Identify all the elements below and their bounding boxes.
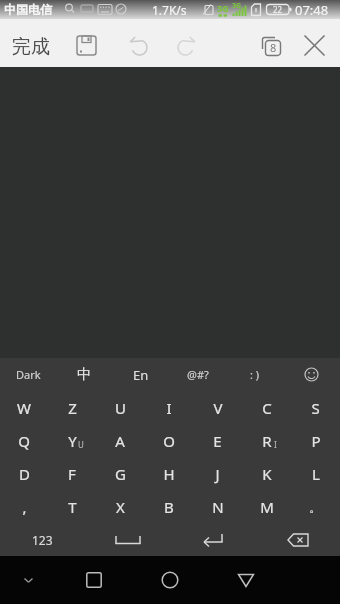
button[interactable]: Y	[48, 424, 96, 457]
button[interactable]: ,	[0, 490, 48, 523]
button[interactable]	[66, 24, 106, 67]
button[interactable]	[170, 523, 255, 556]
button[interactable]	[85, 523, 170, 556]
staticText: C	[262, 398, 272, 418]
button[interactable]: P	[291, 424, 340, 457]
staticText: O	[163, 431, 175, 451]
staticText: 中国电信	[4, 2, 52, 17]
button[interactable]: X	[96, 490, 144, 523]
button[interactable]: 123	[0, 523, 85, 556]
button[interactable]: M	[242, 490, 291, 523]
button[interactable]: S	[291, 391, 340, 424]
button[interactable]	[294, 24, 335, 67]
button[interactable]: En	[112, 358, 169, 391]
staticText: Y	[68, 431, 77, 451]
staticText: : )	[250, 367, 260, 382]
button[interactable]: 中	[56, 358, 112, 391]
button[interactable]: 。	[291, 490, 340, 523]
button[interactable]: K	[242, 457, 291, 490]
staticText: T	[68, 497, 77, 517]
button[interactable]: O	[144, 424, 193, 457]
staticText: D	[19, 464, 30, 484]
button[interactable]: 8	[249, 24, 293, 67]
button[interactable]: F	[48, 457, 96, 490]
staticText: X	[116, 497, 125, 517]
staticText: N	[212, 497, 224, 517]
button[interactable]	[283, 358, 340, 391]
button[interactable]: : )	[226, 358, 283, 391]
staticText: P	[311, 431, 321, 451]
button[interactable]: @#?	[169, 358, 226, 391]
button[interactable]: W	[0, 391, 48, 424]
staticText: R	[262, 431, 272, 451]
button[interactable]: D	[0, 457, 48, 490]
staticText: I	[166, 398, 172, 418]
button[interactable]: U	[96, 391, 144, 424]
button[interactable]: A	[96, 424, 144, 457]
button[interactable]: 完成	[3, 19, 59, 67]
staticText: Dark	[16, 367, 41, 382]
staticText: A	[115, 431, 125, 451]
staticText: F	[68, 464, 76, 484]
button[interactable]	[119, 24, 159, 67]
button[interactable]	[255, 523, 340, 556]
button[interactable]: E	[193, 424, 242, 457]
staticText: Z	[68, 398, 77, 418]
staticText: ,	[22, 497, 27, 517]
button[interactable]: Dark	[0, 358, 56, 391]
button[interactable]	[166, 24, 206, 67]
staticText: 123	[32, 532, 53, 548]
button[interactable]: H	[144, 457, 193, 490]
button[interactable]	[74, 556, 114, 604]
staticText: 07:48	[295, 1, 329, 19]
button[interactable]	[14, 566, 42, 594]
button[interactable]: R	[242, 424, 291, 457]
staticText: U	[115, 398, 126, 418]
staticText: H	[163, 464, 175, 484]
staticText: 3G	[217, 2, 229, 14]
staticText: 3G	[232, 1, 242, 11]
staticText: V	[213, 398, 223, 418]
button[interactable]	[150, 556, 190, 604]
staticText: S	[311, 398, 320, 418]
staticText: Q	[18, 431, 30, 451]
staticText: @#?	[187, 367, 209, 382]
button[interactable]: V	[193, 391, 242, 424]
staticText: J	[215, 464, 220, 484]
staticText: I	[274, 439, 277, 450]
button[interactable]: G	[96, 457, 144, 490]
staticText: 中	[77, 366, 91, 384]
staticText: B	[164, 497, 174, 517]
staticText: En	[133, 366, 149, 384]
button[interactable]: J	[193, 457, 242, 490]
button[interactable]: C	[242, 391, 291, 424]
staticText: L	[312, 464, 320, 484]
staticText: U	[78, 439, 84, 450]
staticText: G	[115, 464, 126, 484]
button[interactable]: Z	[48, 391, 96, 424]
button[interactable]: T	[48, 490, 96, 523]
staticText: K	[262, 464, 272, 484]
button[interactable]	[226, 556, 266, 604]
staticText: 1.7K/s	[152, 2, 187, 18]
staticText: W	[17, 398, 31, 418]
button[interactable]: B	[144, 490, 193, 523]
button[interactable]: N	[193, 490, 242, 523]
staticText: 8	[270, 40, 277, 55]
staticText: 完成	[12, 35, 50, 59]
staticText: 22	[273, 4, 283, 15]
button[interactable]: I	[144, 391, 193, 424]
button[interactable]: Q	[0, 424, 48, 457]
button[interactable]: L	[291, 457, 340, 490]
staticText: E	[213, 431, 222, 451]
staticText: M	[260, 497, 274, 517]
staticText: 。	[309, 499, 322, 515]
